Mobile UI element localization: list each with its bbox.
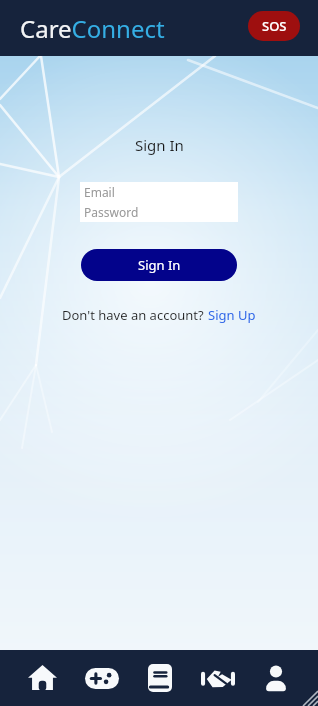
button[interactable]: SOS	[248, 11, 300, 41]
staticText: Sign In	[138, 256, 181, 274]
button[interactable]: Email	[80, 182, 238, 202]
button[interactable]	[72, 650, 131, 706]
button[interactable]	[13, 650, 72, 706]
staticText: CareConnect	[20, 12, 165, 45]
button[interactable]: Sign In	[81, 249, 237, 281]
staticText: Sign In	[135, 135, 184, 155]
staticText: SOS	[262, 17, 287, 35]
button[interactable]: Password	[80, 202, 238, 222]
button[interactable]	[247, 650, 305, 706]
button[interactable]	[131, 650, 189, 706]
staticText: Don't have an account?	[62, 306, 208, 324]
button[interactable]	[189, 650, 247, 706]
staticText: Email	[84, 184, 115, 200]
staticText: Password	[84, 204, 139, 220]
button[interactable]: Sign Up	[208, 306, 256, 324]
